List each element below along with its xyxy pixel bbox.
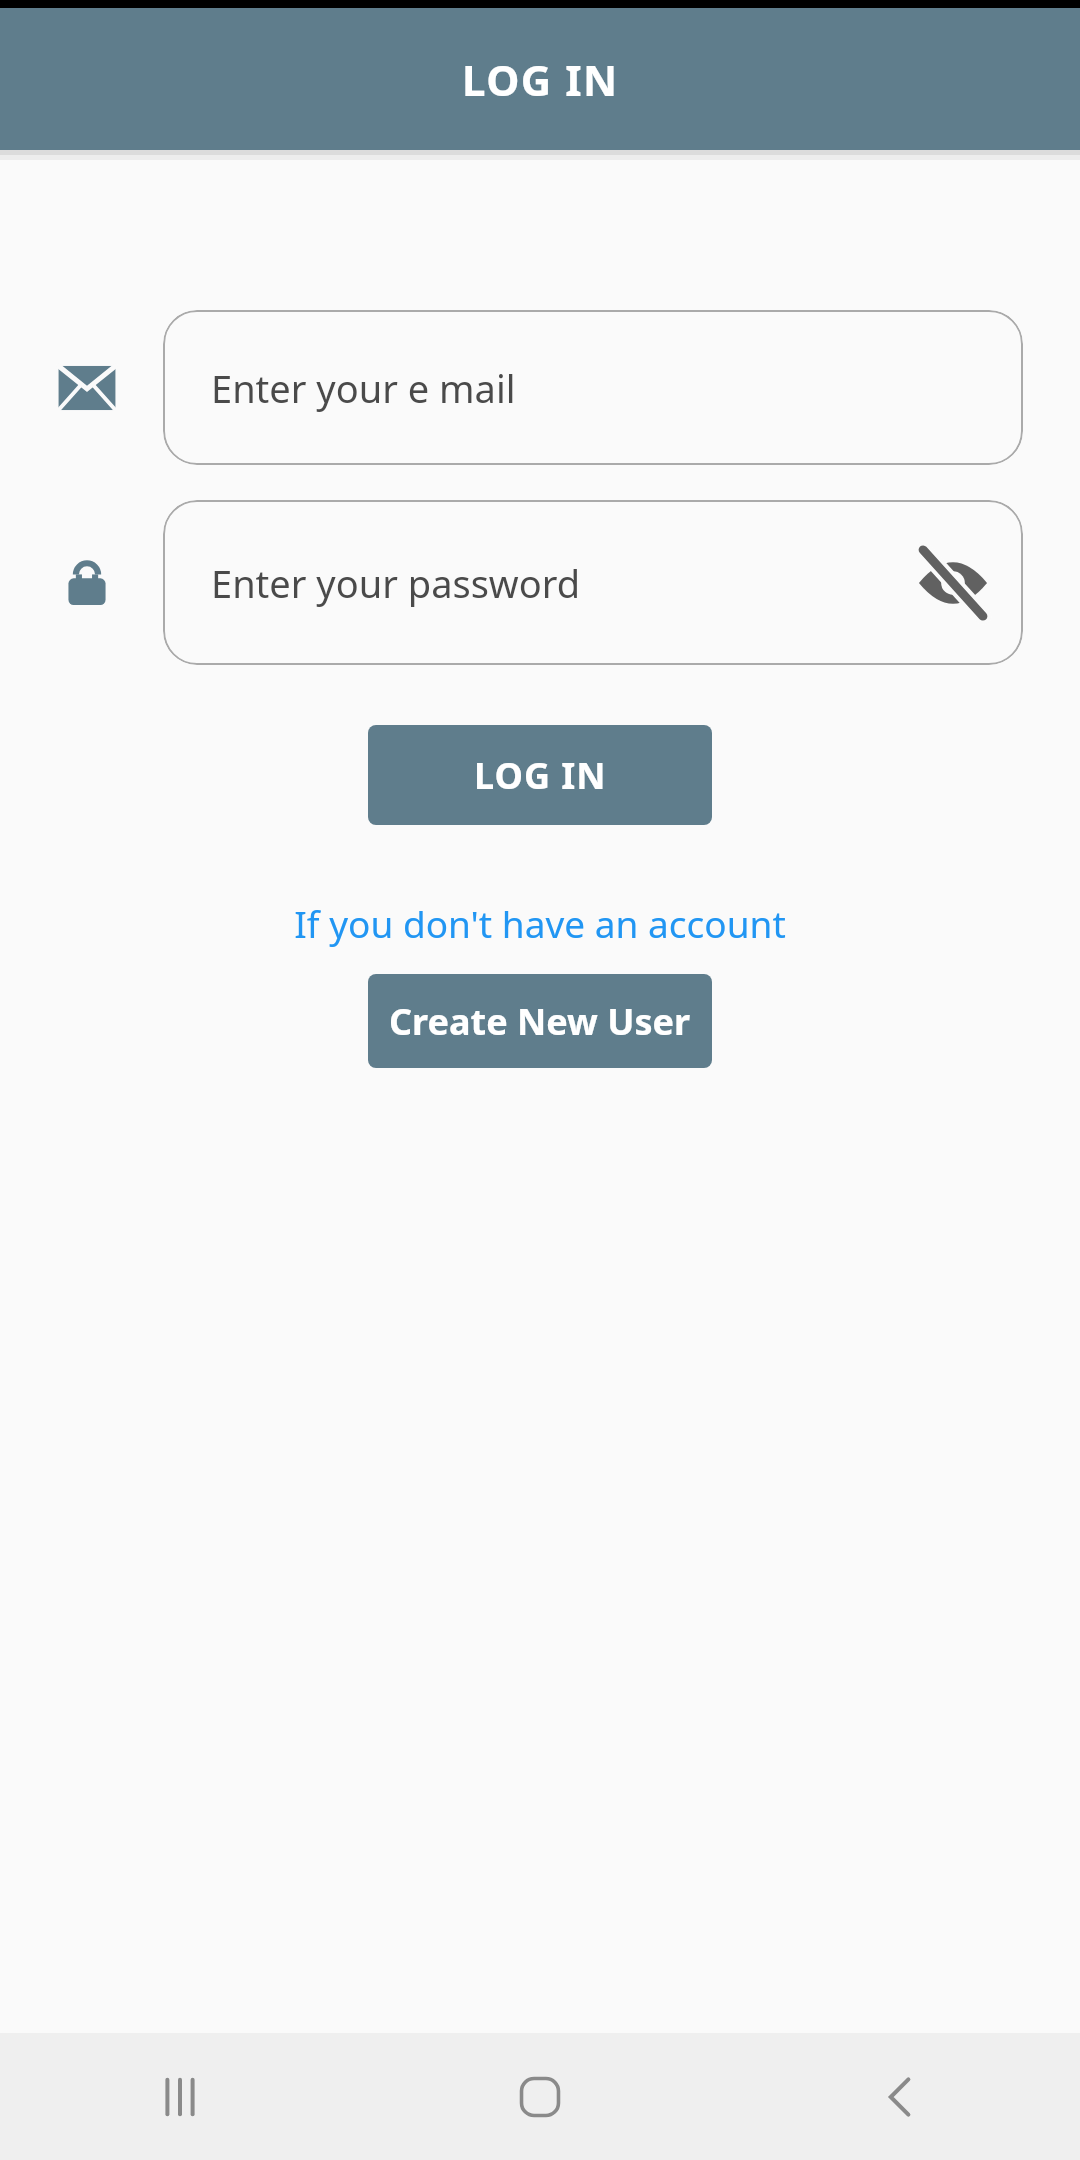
staticText: LOG IN [474,751,607,800]
button[interactable]: Home [360,2033,720,2160]
staticText: Enter your password [211,557,581,609]
button[interactable]: Enter your e mail [163,310,1023,465]
button[interactable]: LOG IN [368,725,712,825]
button[interactable]: Create New User [368,974,712,1068]
staticText: Enter your e mail [211,362,516,414]
other: Password [58,554,116,612]
staticText: LOG IN [462,51,619,108]
other: Email [58,359,116,417]
button[interactable]: Recent apps [0,2033,360,2160]
button[interactable]: Show password [913,543,993,623]
staticText: Create New User [389,997,691,1046]
button[interactable]: If you don't have an account [0,898,1080,948]
button[interactable]: Back [720,2033,1080,2160]
button[interactable]: Enter your password [163,500,1023,665]
